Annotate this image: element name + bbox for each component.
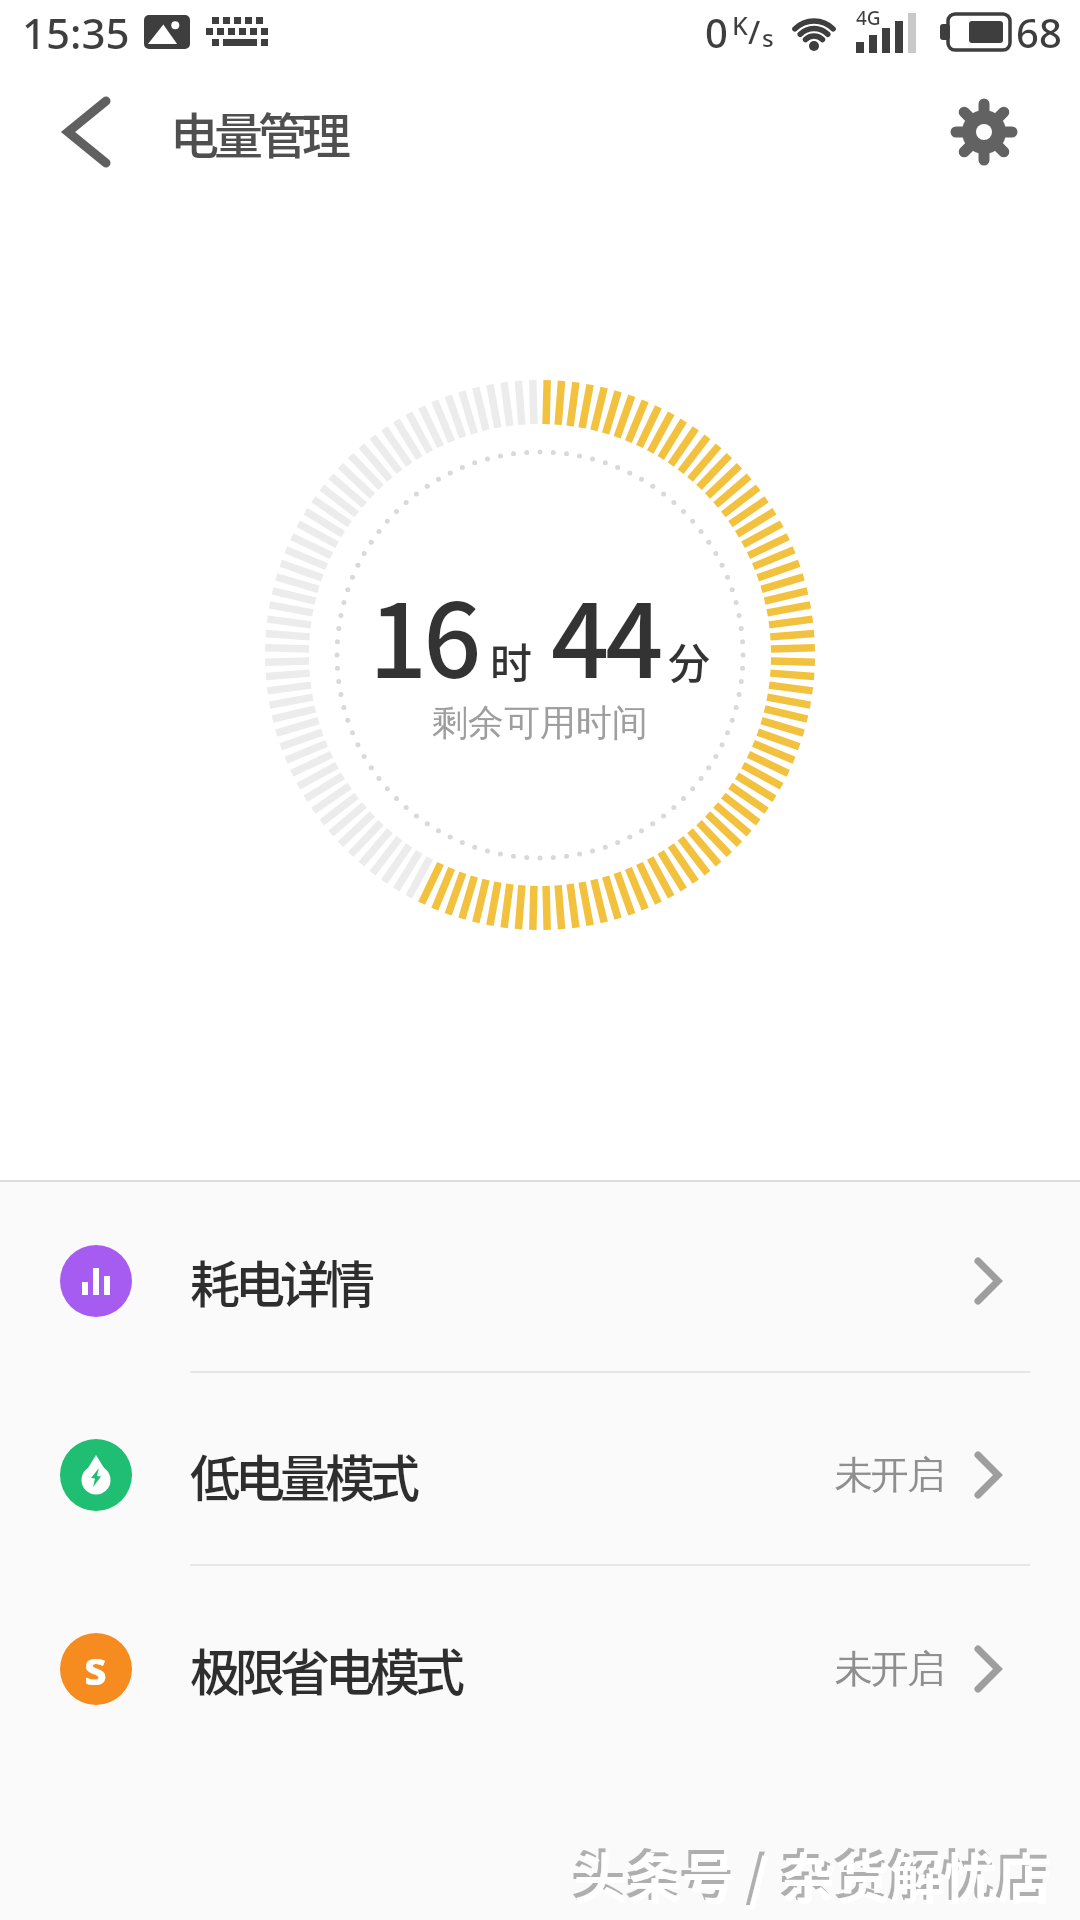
staticText: 时 xyxy=(490,630,533,691)
staticText: 头条号 / 杂货解忧店 xyxy=(574,1836,1052,1914)
staticText: 极限省电模式 xyxy=(190,1633,460,1705)
staticText: 44 xyxy=(551,560,660,708)
staticText: 68 xyxy=(1016,5,1062,59)
staticText: 未开启 xyxy=(836,1645,944,1693)
staticText: / xyxy=(748,10,761,54)
staticText: 15:35 xyxy=(22,4,130,61)
staticText: 4G xyxy=(856,5,881,31)
staticText: 剩余可用时间 xyxy=(432,700,648,745)
staticText: 头条号 / 杂货解忧店 xyxy=(571,1832,1049,1910)
staticText: 16 xyxy=(369,560,478,708)
staticText: s xyxy=(762,21,774,54)
staticText: s xyxy=(84,1636,108,1699)
staticText: 电量管理 xyxy=(170,97,347,168)
staticText: 未开启 xyxy=(836,1451,944,1499)
staticText: 低电量模式 xyxy=(190,1439,415,1511)
staticText: K xyxy=(732,8,748,42)
staticText: 耗电详情 xyxy=(190,1245,370,1317)
staticText: 0 xyxy=(705,5,728,59)
staticText: 分 xyxy=(668,630,711,691)
